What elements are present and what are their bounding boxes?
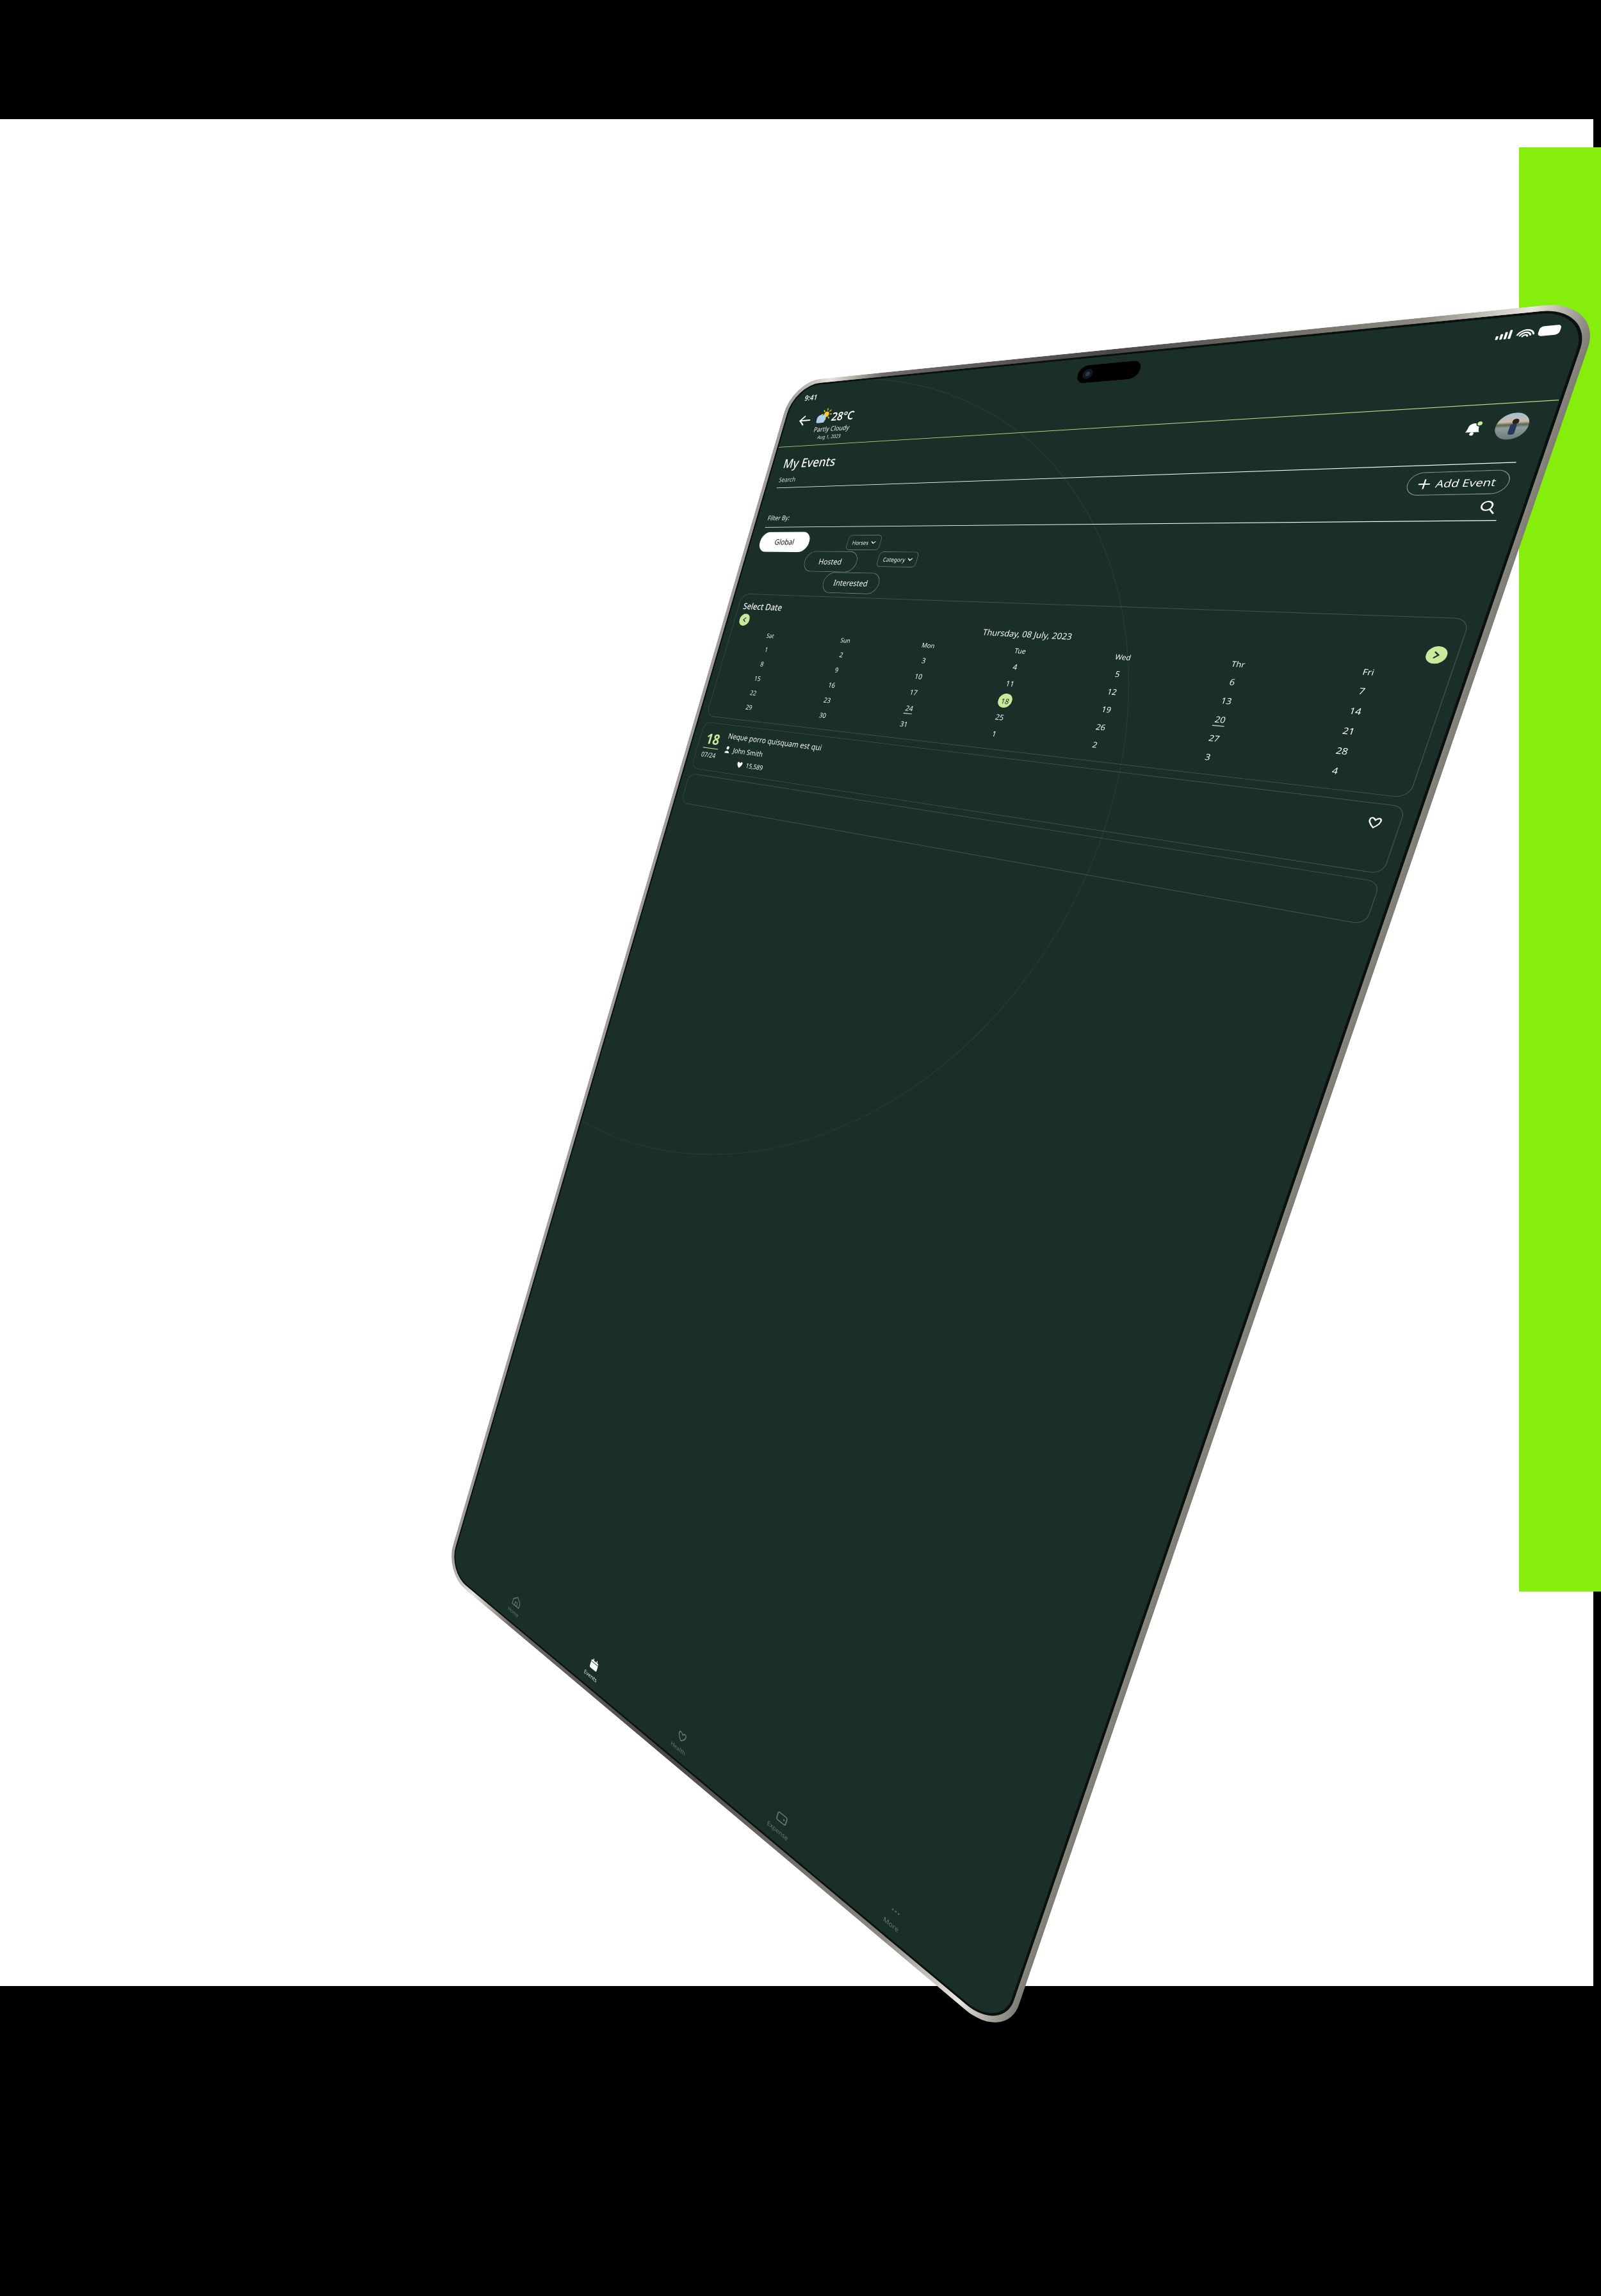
staticText: 4	[1011, 662, 1019, 672]
button[interactable]: 21	[1279, 716, 1423, 748]
button[interactable]: 19	[1051, 696, 1165, 724]
button[interactable]: 10	[874, 665, 966, 688]
button[interactable]: 3	[1147, 742, 1273, 773]
button[interactable]: More	[871, 1889, 917, 1945]
button[interactable]: 24	[865, 697, 955, 721]
staticText: 25	[994, 712, 1006, 723]
button[interactable]: 6	[1170, 669, 1298, 696]
staticText: 26	[1094, 721, 1108, 733]
staticText: Home	[507, 1604, 520, 1620]
button[interactable]: Interested	[820, 572, 882, 594]
staticText: 19	[1100, 704, 1113, 716]
staticText: Neque porro quisquam est qui	[727, 731, 824, 753]
button[interactable]: 7	[1292, 677, 1437, 707]
button[interactable]: 8	[725, 654, 801, 674]
button[interactable]: 1	[945, 721, 1046, 748]
button[interactable]: Next	[1423, 646, 1450, 664]
staticText: 5	[1113, 669, 1122, 680]
button[interactable]: Hosted	[802, 551, 860, 572]
button[interactable]: Search	[1471, 496, 1504, 518]
staticText: 28°C	[830, 407, 857, 424]
button[interactable]: 9	[796, 660, 879, 681]
button[interactable]: Notifications	[1454, 416, 1491, 441]
staticText: More	[882, 1914, 900, 1935]
button[interactable]: Profile	[1491, 412, 1533, 440]
staticText: 18	[704, 728, 723, 749]
staticText: 9:41	[803, 392, 819, 403]
button[interactable]: 4	[966, 656, 1068, 679]
staticText: 9	[834, 665, 840, 675]
button[interactable]: 26	[1046, 714, 1159, 742]
staticText: Horses	[851, 539, 870, 547]
staticText: 7	[1357, 685, 1367, 698]
button[interactable]: Favorite	[1358, 810, 1391, 835]
button[interactable]: 28	[1273, 735, 1416, 768]
button[interactable]: 2	[801, 645, 884, 665]
staticText: 24	[904, 703, 915, 714]
button[interactable]: 31	[860, 712, 950, 737]
button[interactable]: 4	[1266, 754, 1409, 789]
button[interactable]: 20	[1159, 705, 1286, 735]
button[interactable]: Events	[577, 1648, 608, 1691]
staticText: Mon	[885, 639, 974, 652]
button[interactable]: 23	[787, 689, 870, 712]
button[interactable]: 1	[729, 640, 805, 660]
button[interactable]: Horses	[845, 535, 883, 550]
staticText: Sun	[806, 634, 887, 647]
button[interactable]: Previous	[738, 613, 751, 626]
button[interactable]: 18	[955, 688, 1057, 714]
staticText: 23	[822, 695, 832, 705]
staticText: Wed	[1069, 649, 1181, 665]
staticText: 20	[1213, 714, 1228, 726]
button[interactable]: Global	[757, 532, 812, 552]
button[interactable]: 3	[879, 650, 971, 672]
button[interactable]: 13	[1165, 687, 1292, 716]
button[interactable]: 27	[1153, 724, 1279, 754]
button[interactable]: 5	[1062, 662, 1176, 687]
staticText: 31	[899, 719, 910, 729]
button[interactable]: 17	[870, 681, 960, 705]
staticText: 3	[1203, 751, 1213, 763]
button[interactable]: Add Event	[1403, 469, 1514, 496]
button[interactable]: Expense	[760, 1798, 800, 1849]
staticText: 13	[1219, 695, 1234, 707]
staticText: 2	[838, 650, 845, 660]
staticText: 1	[991, 729, 998, 739]
staticText: Fri	[1300, 663, 1442, 682]
button[interactable]: 30	[783, 704, 865, 727]
staticText: 30	[818, 710, 828, 720]
button[interactable]: 16	[792, 674, 874, 697]
staticText: 4	[1330, 765, 1340, 777]
staticText: 18	[1000, 696, 1011, 706]
staticText: 8	[759, 660, 765, 669]
staticText: 07/24	[700, 749, 717, 760]
staticText: Category	[882, 556, 907, 564]
staticText: Hosted	[817, 556, 844, 567]
button[interactable]: Category	[876, 551, 920, 568]
staticText: Thr	[1177, 656, 1303, 673]
staticText: Thursday, 08 July, 2023	[748, 615, 1428, 662]
button[interactable]: 22	[717, 683, 792, 704]
staticText: 15,589	[745, 761, 764, 773]
button[interactable]: 12	[1057, 679, 1170, 705]
button[interactable]: 2	[1041, 731, 1153, 760]
staticText: Health	[670, 1739, 686, 1758]
staticText: 14	[1347, 705, 1364, 718]
staticText: 11	[1004, 678, 1016, 689]
staticText: 22	[749, 688, 758, 698]
button[interactable]: 29	[713, 697, 787, 719]
button[interactable]: Health	[663, 1718, 698, 1765]
staticText: 29	[745, 703, 754, 712]
staticText: Global	[773, 537, 796, 547]
button[interactable]: 14	[1286, 696, 1430, 727]
button[interactable]: 11	[960, 672, 1062, 696]
button[interactable]: 15	[721, 668, 796, 689]
staticText: 21	[1341, 725, 1357, 738]
button[interactable]: Back	[793, 410, 815, 431]
button[interactable]: Home	[501, 1586, 529, 1625]
staticText: 6	[1228, 676, 1237, 688]
staticText: Search	[778, 475, 797, 484]
button[interactable]: 25	[950, 705, 1051, 731]
staticText: 16	[827, 680, 837, 690]
staticText: 1	[763, 645, 769, 654]
